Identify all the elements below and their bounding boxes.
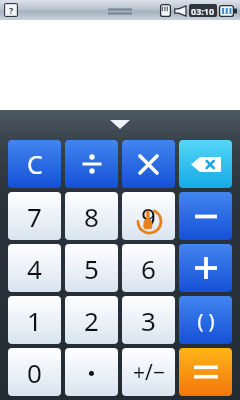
staticText: 3 — [141, 303, 156, 338]
staticText: · — [87, 352, 96, 393]
staticText: +/− — [133, 358, 165, 387]
button[interactable]: 9 — [122, 192, 175, 240]
button[interactable]: 5 — [65, 244, 118, 292]
staticText: 8 — [84, 199, 99, 234]
button[interactable]: Minus — [179, 192, 232, 240]
button[interactable]: ( ) — [179, 296, 232, 344]
button[interactable]: Divide — [65, 140, 118, 188]
staticText: ( ) — [197, 307, 215, 334]
button[interactable]: Multiply — [122, 140, 175, 188]
staticText: 6 — [141, 251, 156, 286]
staticText: 03:10 — [191, 5, 215, 17]
button[interactable]: Decimal point — [65, 348, 118, 396]
staticText: 1 — [27, 303, 42, 338]
button[interactable]: 6 — [122, 244, 175, 292]
button[interactable]: Equals — [179, 348, 232, 396]
button[interactable]: Collapse keypad — [0, 110, 240, 138]
button[interactable]: C — [8, 140, 61, 188]
staticText: 7 — [27, 199, 42, 234]
staticText: 2 — [84, 303, 99, 338]
staticText: 0 — [27, 355, 42, 390]
button[interactable]: 4 — [8, 244, 61, 292]
button[interactable]: 7 — [8, 192, 61, 240]
staticText: ? — [9, 4, 14, 16]
button[interactable]: 1 — [8, 296, 61, 344]
button[interactable]: Plus — [179, 244, 232, 292]
button[interactable]: 3 — [122, 296, 175, 344]
button[interactable]: 0 — [8, 348, 61, 396]
button[interactable]: 2 — [65, 296, 118, 344]
staticText: 4 — [27, 251, 42, 286]
button[interactable]: 8 — [65, 192, 118, 240]
staticText: 5 — [84, 251, 99, 286]
button[interactable]: Plus minus — [122, 348, 175, 396]
staticText: 9 — [141, 199, 156, 234]
staticText: C — [27, 147, 43, 181]
button[interactable]: Help — [4, 3, 18, 17]
button[interactable]: Backspace — [179, 140, 232, 188]
